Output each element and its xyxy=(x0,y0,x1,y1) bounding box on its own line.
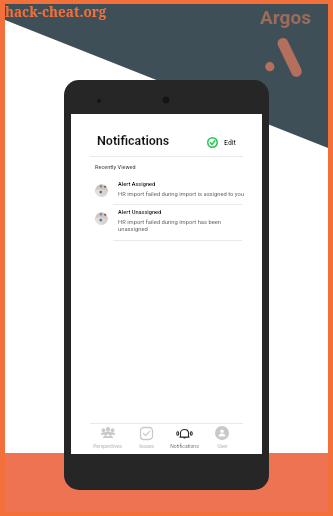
other: Perspectives xyxy=(101,426,115,440)
button[interactable]: Edit xyxy=(204,134,239,151)
staticText: HR import failed during import is assign… xyxy=(118,191,245,198)
staticText: hack-cheat.org xyxy=(5,3,107,21)
button[interactable]: Issues xyxy=(127,425,165,449)
staticText: Argos xyxy=(260,6,311,28)
staticText: Alert Assigned xyxy=(118,181,156,188)
button[interactable]: Alert Unassigned xyxy=(95,209,247,233)
button[interactable]: Notifications xyxy=(165,425,203,449)
staticText: Issues xyxy=(139,443,154,449)
staticText: HR import failed during import has been xyxy=(118,219,222,226)
button[interactable]: User xyxy=(203,425,241,449)
button[interactable]: Alert Assigned xyxy=(95,181,247,198)
staticText: Recently Viewed xyxy=(95,164,136,170)
staticText: Edit xyxy=(224,139,236,147)
other: User xyxy=(215,426,229,440)
staticText: Notifications xyxy=(170,443,199,449)
staticText: User xyxy=(217,443,228,449)
staticText: Alert Unassigned xyxy=(118,209,162,216)
button[interactable]: Perspectives xyxy=(88,425,127,449)
other: Notifications xyxy=(176,425,193,441)
other: Issues xyxy=(139,426,154,441)
staticText: Notifications xyxy=(97,133,170,148)
staticText: unassigned xyxy=(118,226,148,233)
staticText: Perspectives xyxy=(93,443,122,449)
